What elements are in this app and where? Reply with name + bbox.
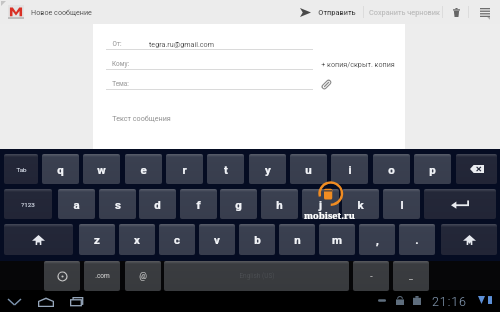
button[interactable]: Backspace xyxy=(456,154,497,184)
button[interactable]: e xyxy=(125,154,162,184)
button[interactable]: Сохранить черновик xyxy=(366,0,442,24)
button[interactable]: Кому: xyxy=(106,58,313,70)
button[interactable]: ?123 xyxy=(4,189,52,219)
button[interactable]: k xyxy=(342,189,379,219)
button[interactable]: От: xyxy=(106,38,313,50)
staticText: m xyxy=(332,233,342,246)
staticText: Tab xyxy=(16,166,27,173)
staticText: e xyxy=(140,163,147,176)
staticText: 21:16 xyxy=(432,294,467,309)
button[interactable]: Прикрепить файл xyxy=(317,76,336,93)
staticText: p xyxy=(429,163,436,176)
staticText: Сохранить черновик xyxy=(369,8,440,17)
staticText: Отправить xyxy=(318,8,356,17)
staticText: b xyxy=(254,233,261,246)
button[interactable]: c xyxy=(159,224,195,255)
button[interactable]: Удалить xyxy=(444,0,468,24)
staticText: h xyxy=(276,198,283,211)
staticText: Кому: xyxy=(112,60,129,68)
staticText: .com xyxy=(95,272,110,280)
button[interactable]: x xyxy=(119,224,155,255)
button[interactable]: w xyxy=(83,154,120,184)
button[interactable]: p xyxy=(414,154,451,184)
staticText: English (US) xyxy=(239,272,275,280)
button[interactable]: o xyxy=(373,154,410,184)
button[interactable]: a xyxy=(58,189,95,219)
staticText: От: xyxy=(112,40,122,48)
button[interactable]: l xyxy=(383,189,420,219)
button[interactable]: Tab xyxy=(4,154,38,184)
button[interactable]: .com xyxy=(84,261,120,291)
staticText: s xyxy=(115,198,121,211)
staticText: n xyxy=(294,233,301,246)
button[interactable]: y xyxy=(249,154,286,184)
staticText: Тема: xyxy=(112,80,129,88)
button[interactable]: q xyxy=(42,154,79,184)
button[interactable]: m xyxy=(319,224,355,255)
button[interactable]: Скрыть клавиатуру xyxy=(2,290,27,312)
staticText: c xyxy=(174,233,180,246)
button[interactable]: - xyxy=(353,261,389,291)
staticText: f xyxy=(196,198,201,211)
button[interactable]: v xyxy=(199,224,235,255)
button[interactable]: Enter xyxy=(424,189,496,219)
button[interactable]: b xyxy=(239,224,275,255)
staticText: q xyxy=(57,163,64,176)
button[interactable]: r xyxy=(166,154,203,184)
button[interactable]: Недавние приложения xyxy=(62,290,91,312)
button[interactable]: Shift xyxy=(4,224,73,255)
button[interactable]: s xyxy=(99,189,136,219)
staticText: y xyxy=(265,163,271,176)
button[interactable]: Отправить xyxy=(294,0,360,24)
button[interactable]: Меню xyxy=(472,0,498,24)
button[interactable]: j xyxy=(302,189,339,219)
button[interactable]: g xyxy=(220,189,257,219)
button[interactable]: Смайлики xyxy=(44,261,80,291)
staticText: _ xyxy=(409,271,413,281)
staticText: @ xyxy=(139,271,147,281)
button[interactable]: i xyxy=(331,154,368,184)
button[interactable]: , xyxy=(359,224,395,255)
button[interactable]: z xyxy=(79,224,115,255)
button[interactable]: Новое сообщение xyxy=(4,0,96,24)
button[interactable]: t xyxy=(207,154,244,184)
staticText: i xyxy=(348,163,352,176)
staticText: v xyxy=(214,233,220,246)
staticText: z xyxy=(94,233,100,246)
staticText: Текст сообщения xyxy=(112,114,171,122)
staticText: t xyxy=(224,163,228,176)
button[interactable]: u xyxy=(290,154,327,184)
button[interactable]: + копия/скрыт. копия xyxy=(321,58,399,70)
staticText: u xyxy=(305,163,312,176)
staticText: o xyxy=(388,163,395,176)
staticText: mobiset.ru xyxy=(304,209,355,220)
button[interactable]: . xyxy=(399,224,435,255)
staticText: + копия/скрыт. копия xyxy=(321,60,395,68)
staticText: k xyxy=(357,198,364,211)
staticText: x xyxy=(134,233,140,246)
button[interactable]: _ xyxy=(393,261,429,291)
staticText: g xyxy=(235,198,242,211)
staticText: a xyxy=(73,198,80,211)
button[interactable]: n xyxy=(279,224,315,255)
staticText: j xyxy=(319,198,322,211)
staticText: , xyxy=(376,233,379,246)
staticText: - xyxy=(370,271,373,281)
staticText: ?123 xyxy=(21,201,35,208)
staticText: l xyxy=(400,198,404,211)
staticText: d xyxy=(154,198,161,211)
staticText: r xyxy=(182,163,187,176)
staticText: tegra.ru@gmail.com xyxy=(149,40,214,48)
button[interactable]: d xyxy=(139,189,176,219)
button[interactable]: Главный экран xyxy=(31,290,60,312)
staticText: w xyxy=(97,163,106,176)
button[interactable]: @ xyxy=(125,261,161,291)
button[interactable]: Shift xyxy=(441,224,497,255)
button[interactable]: h xyxy=(261,189,298,219)
button[interactable]: f xyxy=(180,189,217,219)
staticText: Новое сообщение xyxy=(31,8,92,16)
staticText: . xyxy=(415,233,419,246)
button[interactable]: Тема: xyxy=(106,78,313,90)
button[interactable]: English (US) xyxy=(164,261,349,291)
